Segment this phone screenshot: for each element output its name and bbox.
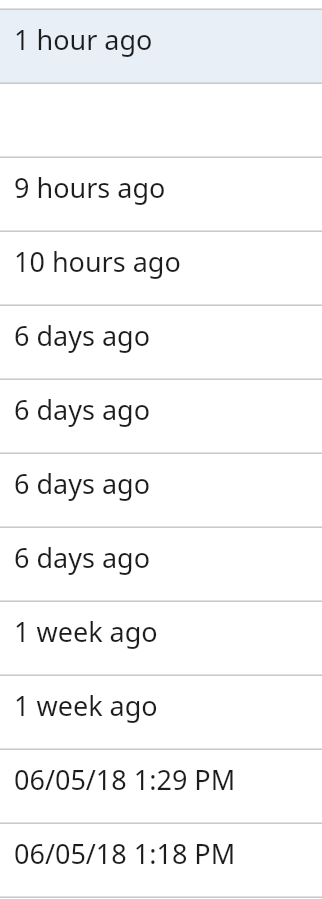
button[interactable]: 06/05/18 1:29 PM: [0, 749, 322, 823]
button[interactable]: 6 days ago: [0, 305, 322, 379]
button[interactable]: 6 days ago: [0, 453, 322, 527]
staticText: 6 days ago: [14, 539, 151, 576]
button[interactable]: 6 days ago: [0, 527, 322, 601]
staticText: 9 hours ago: [14, 169, 166, 206]
button[interactable]: [0, 83, 322, 157]
staticText: 06/05/18 1:29 PM: [14, 761, 236, 798]
button[interactable]: 9 hours ago: [0, 157, 322, 231]
button[interactable]: 06/05/18 1:18 PM: [0, 823, 322, 897]
button[interactable]: 1 hour ago: [0, 9, 322, 83]
staticText: 1 week ago: [14, 613, 158, 650]
staticText: 06/05/18 1:18 PM: [14, 835, 236, 872]
button[interactable]: 1 week ago: [0, 675, 322, 749]
staticText: 1 hour ago: [14, 21, 153, 58]
staticText: 6 days ago: [14, 317, 151, 354]
button[interactable]: 6 days ago: [0, 379, 322, 453]
staticText: 6 days ago: [14, 391, 151, 428]
button[interactable]: 10 hours ago: [0, 231, 322, 305]
staticText: 10 hours ago: [14, 243, 181, 280]
button[interactable]: 1 week ago: [0, 601, 322, 675]
staticText: 6 days ago: [14, 465, 151, 502]
staticText: 1 week ago: [14, 687, 158, 724]
